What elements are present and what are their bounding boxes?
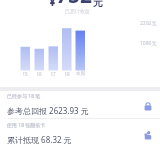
staticText: 18 — [64, 71, 70, 77]
staticText: 15 — [22, 71, 28, 77]
staticText: 2202元 — [140, 20, 157, 27]
staticText: 本周 — [76, 71, 85, 77]
staticText: 累计抵现 68.32 元 — [7, 134, 72, 145]
staticText: 16 — [36, 71, 42, 77]
staticText: 1080元 — [140, 40, 157, 47]
staticText: 已经参与 18 笔 — [7, 93, 41, 100]
button[interactable]: 使用 18 张翻倍卡 — [0, 119, 160, 148]
staticText: 752 — [56, 0, 93, 10]
other: Order details — [142, 101, 154, 113]
staticText: 使用 18 张翻倍卡 — [7, 122, 46, 129]
staticText: 参考总回报 2623.93 元 — [7, 105, 89, 116]
staticText: ¥ — [49, 0, 56, 9]
staticText: 已累计收益 — [65, 8, 90, 14]
staticText: 17 — [50, 71, 56, 77]
button[interactable]: 已经参与 18 笔 — [0, 90, 160, 119]
other: Double card — [142, 130, 154, 142]
staticText: 元 — [93, 0, 103, 9]
